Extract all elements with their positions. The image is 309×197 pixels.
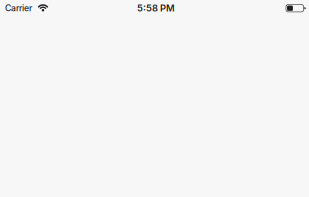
staticText: 5:58 PM <box>137 3 175 14</box>
staticText: Carrier <box>5 3 32 13</box>
